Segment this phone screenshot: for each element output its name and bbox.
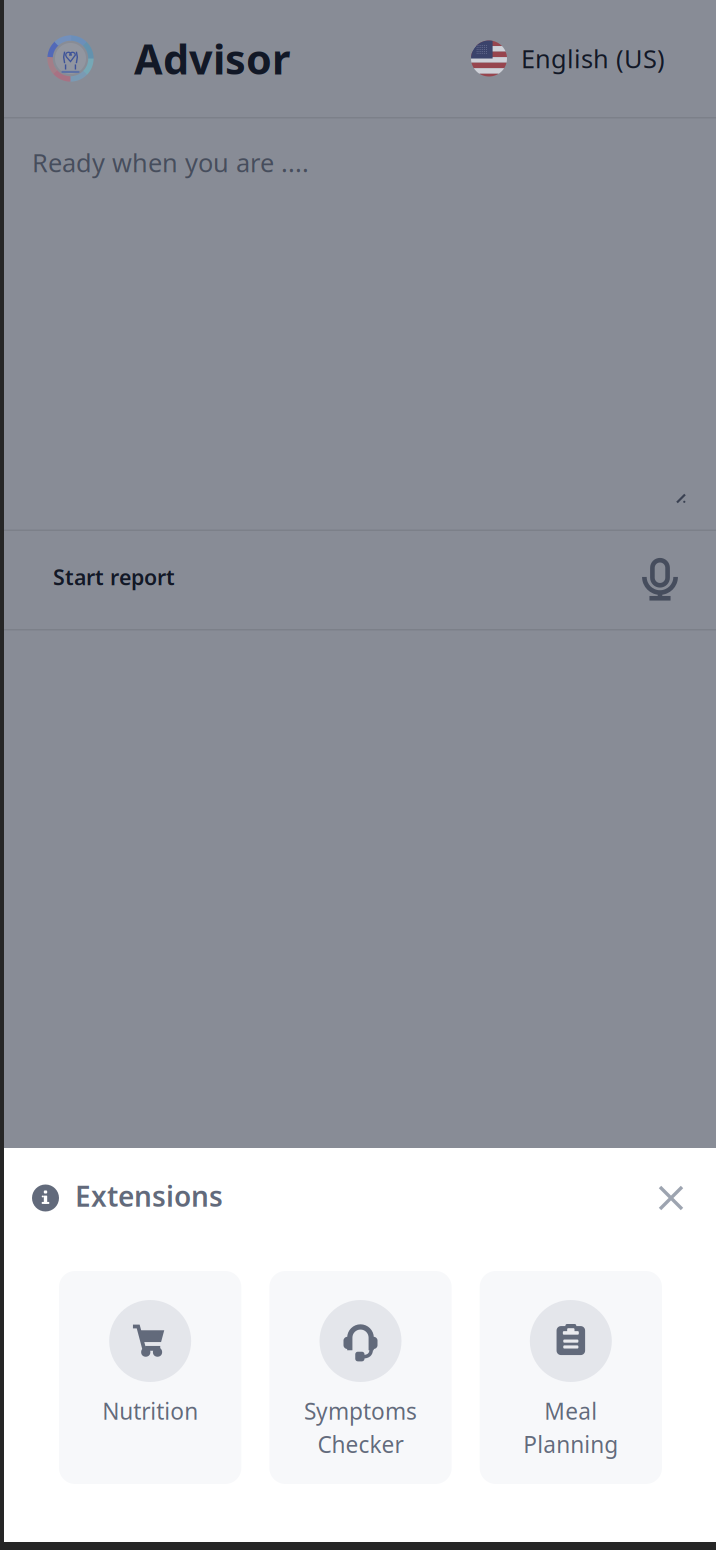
staticText: Symptoms bbox=[304, 1396, 417, 1426]
staticText: Start report bbox=[53, 563, 175, 591]
staticText: Advisor bbox=[134, 31, 290, 86]
button[interactable]: Meal Planning bbox=[480, 1271, 662, 1484]
button[interactable]: Symptoms Checker bbox=[269, 1271, 452, 1484]
staticText: Nutrition bbox=[102, 1396, 198, 1426]
staticText: Ready when you are .... bbox=[32, 145, 309, 179]
button[interactable]: Nutrition bbox=[59, 1271, 241, 1484]
staticText: Meal bbox=[544, 1396, 597, 1426]
staticText: English (US) bbox=[521, 42, 665, 75]
staticText: Extensions bbox=[75, 1177, 223, 1215]
button[interactable]: Close bbox=[650, 1177, 692, 1219]
staticText: Planning bbox=[523, 1429, 618, 1459]
staticText: Checker bbox=[317, 1429, 403, 1459]
button[interactable]: Record bbox=[638, 558, 682, 602]
button[interactable]: Language: English (US) bbox=[471, 40, 665, 76]
